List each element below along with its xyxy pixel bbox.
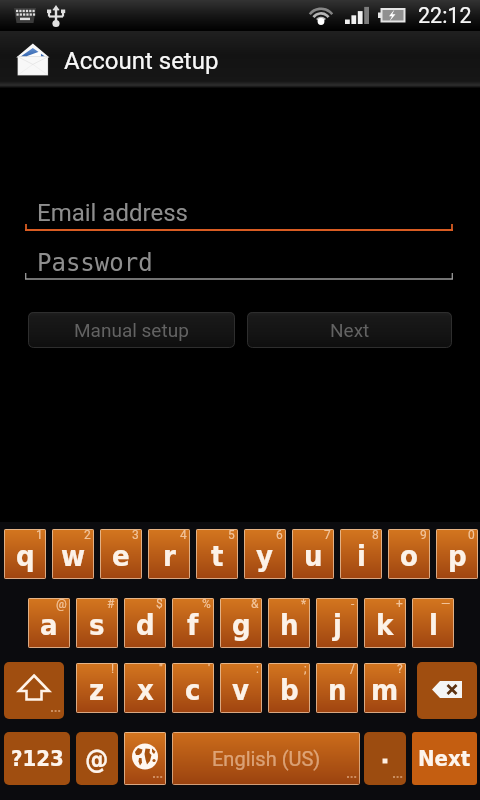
button[interactable]: Backspace	[417, 662, 477, 719]
staticText: @	[85, 744, 109, 774]
button[interactable]: Next	[247, 312, 452, 348]
staticText: p	[448, 539, 467, 573]
staticText: c	[185, 673, 201, 707]
staticText: English (US)	[212, 747, 321, 770]
button[interactable]: e	[100, 529, 142, 579]
staticText: -	[351, 598, 355, 611]
staticText: 6	[276, 529, 283, 542]
staticText: ?123	[11, 746, 64, 772]
button[interactable]: f	[172, 598, 214, 648]
button[interactable]: q	[4, 529, 46, 579]
staticText: Email address	[37, 199, 188, 227]
staticText: $	[156, 598, 163, 611]
staticText: /	[350, 663, 355, 676]
staticText: y	[256, 539, 274, 573]
button[interactable]: Period	[364, 732, 406, 785]
staticText: Next	[330, 319, 370, 341]
button[interactable]: i	[340, 529, 382, 579]
staticText: d	[136, 608, 155, 642]
button[interactable]: c	[172, 663, 214, 713]
staticText: 3	[132, 529, 139, 542]
button[interactable]: b	[268, 663, 310, 713]
button[interactable]: t	[196, 529, 238, 579]
button[interactable]: ?123	[4, 732, 70, 785]
staticText: q	[16, 539, 35, 573]
staticText: 4	[180, 529, 187, 542]
button[interactable]: w	[52, 529, 94, 579]
button[interactable]: @	[76, 732, 118, 785]
button[interactable]: n	[316, 663, 358, 713]
staticText: &	[251, 598, 259, 611]
staticText: 9	[420, 529, 427, 542]
staticText: v	[232, 673, 250, 707]
button[interactable]: Shift	[4, 662, 64, 719]
staticText: m	[371, 673, 399, 707]
staticText: s	[89, 608, 105, 642]
button[interactable]: a	[28, 598, 70, 648]
button[interactable]: p	[436, 529, 478, 579]
staticText: +	[396, 598, 403, 611]
button[interactable]: k	[364, 598, 406, 648]
staticText: #	[107, 598, 115, 611]
staticText: i	[357, 539, 366, 573]
staticText: ?	[397, 663, 403, 676]
staticText: Manual setup	[74, 319, 189, 341]
staticText: w	[61, 539, 86, 573]
staticText: "	[159, 663, 163, 676]
button[interactable]: j	[316, 598, 358, 648]
staticText: Account setup	[64, 47, 219, 75]
button[interactable]: l	[412, 598, 454, 648]
staticText: o	[400, 539, 418, 573]
staticText: 2	[84, 529, 91, 542]
staticText: a	[40, 608, 58, 642]
button[interactable]: Change language	[124, 732, 166, 785]
staticText: *	[301, 598, 307, 611]
staticText: x	[137, 673, 154, 707]
staticText: g	[232, 608, 251, 642]
button[interactable]: v	[220, 663, 262, 713]
button[interactable]: y	[244, 529, 286, 579]
staticText: t	[211, 539, 224, 573]
button[interactable]: u	[292, 529, 334, 579]
staticText: 5	[228, 529, 235, 542]
staticText: ;	[304, 663, 307, 676]
button[interactable]: o	[388, 529, 430, 579]
button[interactable]: d	[124, 598, 166, 648]
staticText: k	[376, 608, 394, 642]
button[interactable]: x	[124, 663, 166, 713]
staticText: 8	[372, 529, 379, 542]
staticText: h	[280, 608, 299, 642]
staticText: Password	[37, 249, 153, 277]
staticText: @	[56, 598, 67, 611]
button[interactable]: r	[148, 529, 190, 579]
staticText: f	[187, 608, 199, 642]
staticText: —	[441, 598, 451, 611]
staticText: 22:12	[418, 3, 472, 28]
staticText: 0	[468, 529, 475, 542]
button[interactable]: Space	[172, 732, 360, 785]
button[interactable]: z	[76, 663, 118, 713]
button[interactable]: s	[76, 598, 118, 648]
staticText: r	[163, 539, 176, 573]
staticText: b	[280, 673, 299, 707]
staticText: %	[202, 598, 211, 611]
button[interactable]: h	[268, 598, 310, 648]
staticText: l	[429, 608, 438, 642]
button[interactable]: m	[364, 663, 406, 713]
staticText: 7	[324, 529, 331, 542]
staticText: Next	[418, 746, 471, 772]
staticText: n	[328, 673, 347, 707]
button[interactable]: g	[220, 598, 262, 648]
staticText: e	[112, 539, 130, 573]
staticText: z	[89, 673, 105, 707]
staticText: '	[208, 663, 211, 676]
staticText: !	[111, 663, 115, 676]
staticText: :	[256, 663, 259, 676]
staticText: j	[333, 608, 342, 642]
button[interactable]: Manual setup	[28, 312, 235, 348]
button[interactable]: Next	[412, 732, 477, 785]
staticText: 1	[36, 529, 43, 542]
staticText: u	[304, 539, 323, 573]
